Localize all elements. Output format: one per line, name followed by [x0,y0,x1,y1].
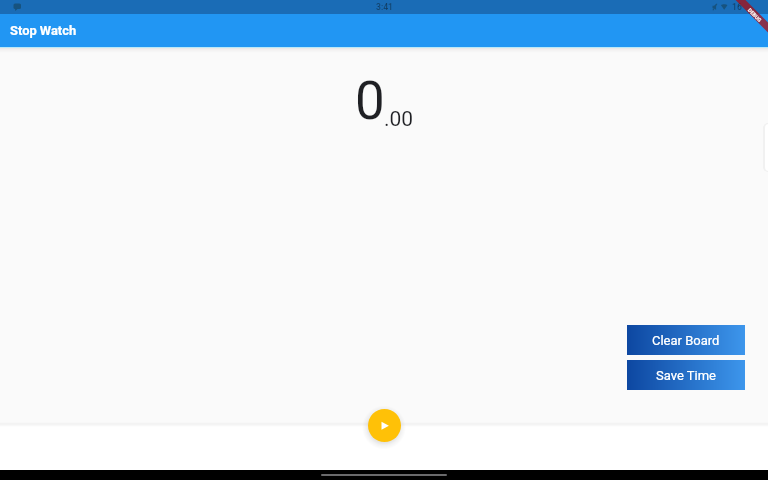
staticText: .00 [384,107,414,132]
staticText: Stop Watch [10,23,77,38]
button[interactable]: Clear Board [627,325,745,355]
button[interactable]: Save Time [627,360,745,390]
button[interactable]: Start [368,409,401,442]
staticText: DEBUG [747,7,763,23]
staticText: 0 [355,70,385,132]
staticText: 3:41 [376,2,393,12]
staticText: 16 [732,2,742,12]
staticText: Clear Board [652,333,720,348]
staticText: Save Time [656,368,716,383]
